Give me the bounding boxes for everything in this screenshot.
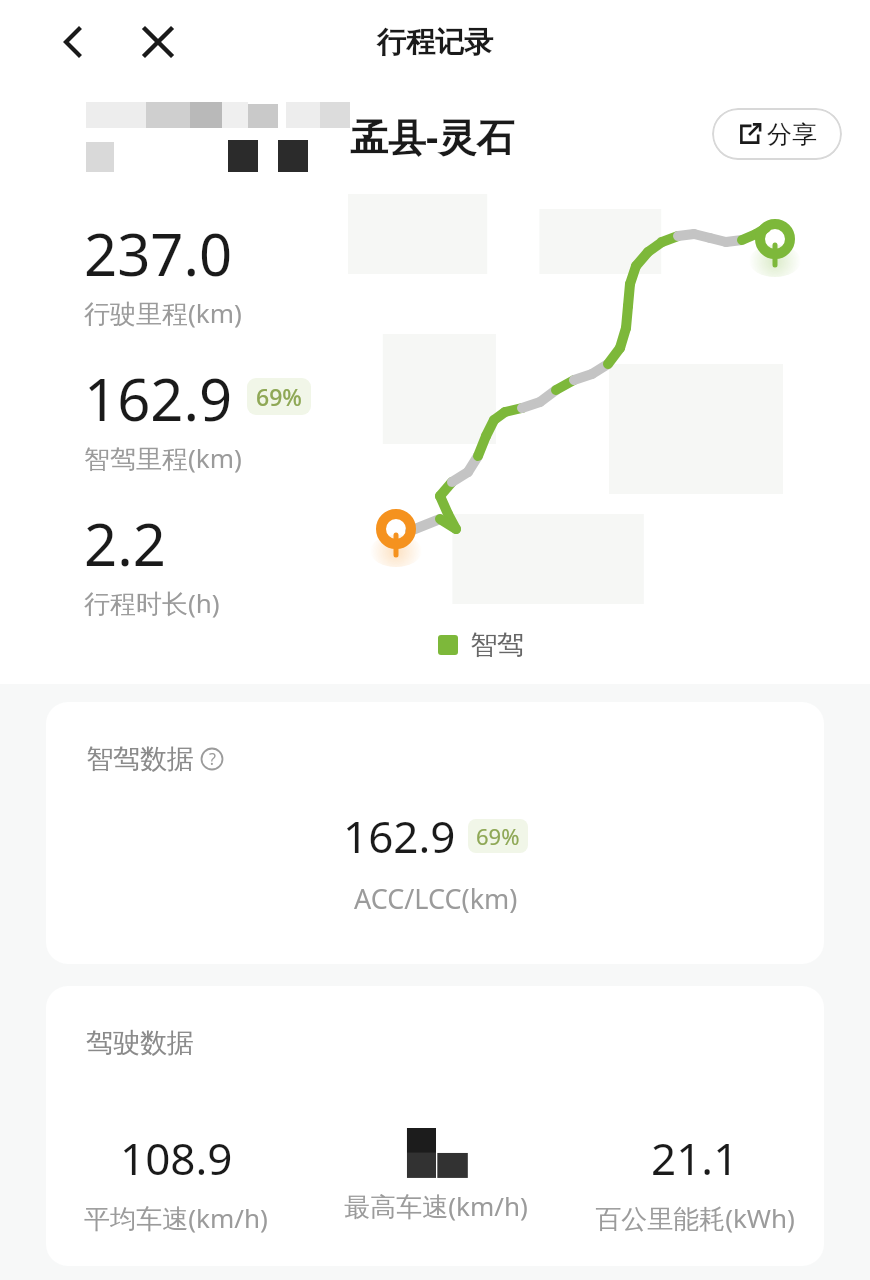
staticText: 智驾里程(km) xyxy=(84,440,242,476)
staticText: 最高车速(km/h) xyxy=(344,1188,528,1224)
staticText: 行驶里程(km) xyxy=(84,295,242,331)
staticText: 21.1 xyxy=(651,1128,739,1188)
staticText: 智驾数据 xyxy=(86,742,194,776)
button[interactable]: Close xyxy=(136,20,180,64)
staticText: 108.9 xyxy=(120,1128,233,1188)
staticText: 69% xyxy=(476,821,520,851)
button[interactable]: 分享 xyxy=(712,108,842,160)
staticText: 行程时长(h) xyxy=(84,585,220,621)
staticText: ACC/LCC(km) xyxy=(354,880,518,917)
staticText: 智驾 xyxy=(470,628,524,662)
button[interactable]: Info xyxy=(200,747,224,771)
staticText: 162.9 xyxy=(84,359,233,438)
button[interactable]: Back xyxy=(50,20,94,64)
staticText: 237.0 xyxy=(84,214,233,293)
staticText: 平均车速(km/h) xyxy=(84,1200,268,1236)
staticText: 162.9 xyxy=(343,806,456,866)
staticText: ? xyxy=(209,748,216,770)
staticText: 行程记录 xyxy=(377,24,493,61)
staticText: 驾驶数据 xyxy=(86,1026,194,1060)
staticText: 百公里能耗(kWh) xyxy=(595,1200,795,1236)
staticText: 69% xyxy=(256,381,302,412)
staticText: 2.2 xyxy=(84,504,166,583)
staticText: 分享 xyxy=(767,119,817,150)
staticText: 孟县-灵石 xyxy=(350,110,515,162)
